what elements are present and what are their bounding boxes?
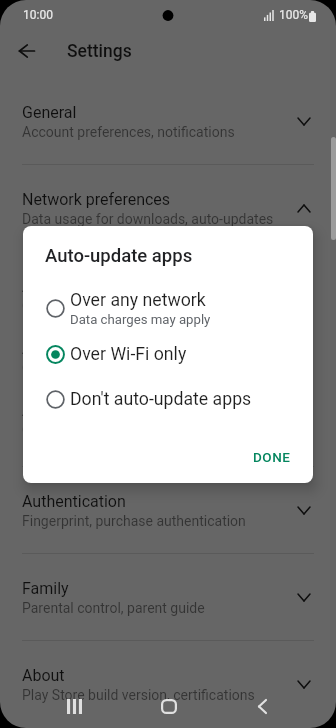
staticText: Auto-update apps xyxy=(22,277,148,296)
staticText: 10:00 xyxy=(23,8,53,22)
staticText: About xyxy=(22,666,65,685)
staticText: Over Wi-Fi only xyxy=(22,298,115,314)
staticText: Auto-play videos xyxy=(22,339,140,358)
button[interactable]: General xyxy=(0,77,336,163)
staticText: Over Wi-Fi only xyxy=(70,344,187,365)
staticText: Over any network xyxy=(70,290,206,311)
button[interactable]: Don't auto-update apps xyxy=(23,377,313,421)
staticText: Auto-update apps xyxy=(45,245,193,267)
button[interactable]: Network preferences xyxy=(0,164,336,250)
staticText: DONE xyxy=(253,449,291,465)
staticText: General xyxy=(22,103,77,122)
button[interactable]: Navigate up xyxy=(7,31,47,71)
staticText: Account preferences, notifications xyxy=(22,124,235,140)
button[interactable]: DONE xyxy=(246,440,298,474)
button[interactable]: Home xyxy=(145,682,193,728)
staticText: Network preferences xyxy=(22,190,171,209)
staticText: Over any network xyxy=(22,422,130,438)
staticText: Fingerprint, purchase authentication xyxy=(22,513,246,529)
button[interactable]: Over any network xyxy=(23,286,313,330)
button[interactable]: Recent apps xyxy=(50,682,98,728)
staticText: Over Wi-Fi only xyxy=(22,360,115,376)
button[interactable]: Authentication xyxy=(0,466,336,552)
button[interactable]: Back xyxy=(238,682,286,728)
button[interactable]: Auto-play videos xyxy=(0,313,336,399)
staticText: Family xyxy=(22,579,69,598)
button[interactable]: About xyxy=(0,640,336,726)
staticText: 100% xyxy=(279,8,309,22)
button[interactable]: Auto-update apps xyxy=(0,251,336,337)
staticText: Don't auto-update apps xyxy=(70,389,252,410)
staticText: Play Store build version, certifications xyxy=(22,687,255,703)
button[interactable]: App download preference xyxy=(0,375,336,461)
staticText: Authentication xyxy=(22,492,126,511)
staticText: App download preference xyxy=(22,401,205,420)
staticText: Parental control, parent guide xyxy=(22,600,205,616)
button[interactable]: Over Wi-Fi only xyxy=(23,332,313,376)
staticText: Data usage for downloads, auto-updates xyxy=(22,211,274,227)
staticText: Settings xyxy=(67,41,132,62)
staticText: Data charges may apply xyxy=(70,312,211,327)
button[interactable]: Family xyxy=(0,553,336,639)
